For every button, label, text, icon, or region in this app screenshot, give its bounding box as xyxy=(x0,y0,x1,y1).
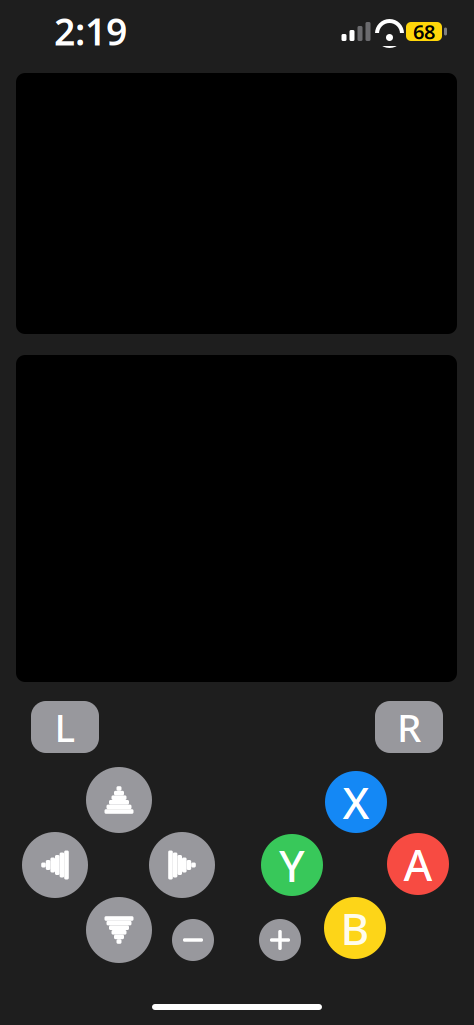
button[interactable]: B xyxy=(324,897,386,959)
button[interactable]: A xyxy=(387,833,449,895)
staticText: L xyxy=(54,701,75,753)
button[interactable]: Start xyxy=(259,919,301,961)
button[interactable]: X xyxy=(325,771,387,833)
button[interactable]: L xyxy=(31,701,99,753)
staticText: 68 xyxy=(413,18,435,45)
staticText: A xyxy=(403,835,432,893)
button[interactable]: Right xyxy=(149,832,215,898)
staticText: X xyxy=(342,773,369,831)
staticText: Y xyxy=(279,836,305,894)
button[interactable]: Up xyxy=(86,767,152,833)
button[interactable]: Down xyxy=(86,897,152,963)
button[interactable]: Y xyxy=(261,834,323,896)
staticText: R xyxy=(397,701,421,753)
button[interactable]: R xyxy=(375,701,443,753)
button[interactable]: Left xyxy=(22,832,88,898)
button[interactable]: Select xyxy=(172,919,214,961)
staticText: B xyxy=(340,899,369,957)
staticText: 2:19 xyxy=(54,6,127,56)
